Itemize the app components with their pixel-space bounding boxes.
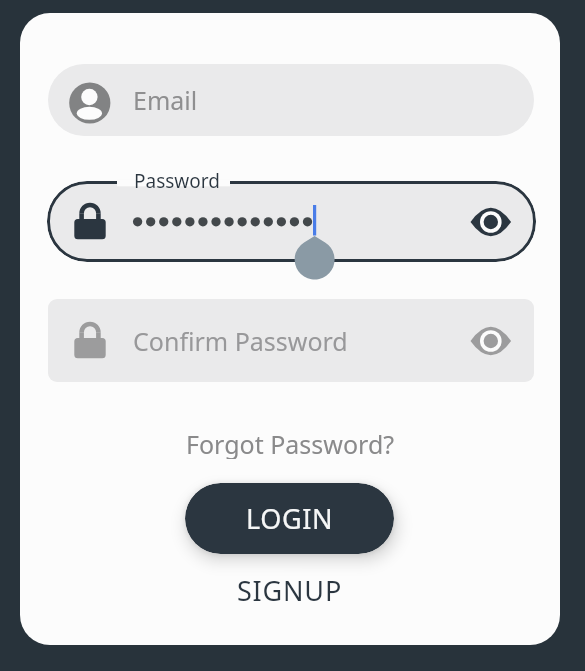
staticText: Confirm Password: [133, 324, 348, 358]
button[interactable]: LOGIN: [185, 483, 394, 554]
staticText: Password: [134, 168, 220, 194]
staticText: Forgot Password?: [186, 427, 395, 459]
staticText: SIGNUP: [237, 572, 343, 604]
button[interactable]: [48, 64, 534, 136]
button[interactable]: [47, 181, 536, 262]
button[interactable]: Forgot Password?: [140, 427, 440, 459]
staticText: LOGIN: [246, 500, 334, 537]
button[interactable]: [48, 299, 534, 382]
button[interactable]: SIGNUP: [140, 572, 440, 604]
staticText: Email: [133, 83, 198, 117]
